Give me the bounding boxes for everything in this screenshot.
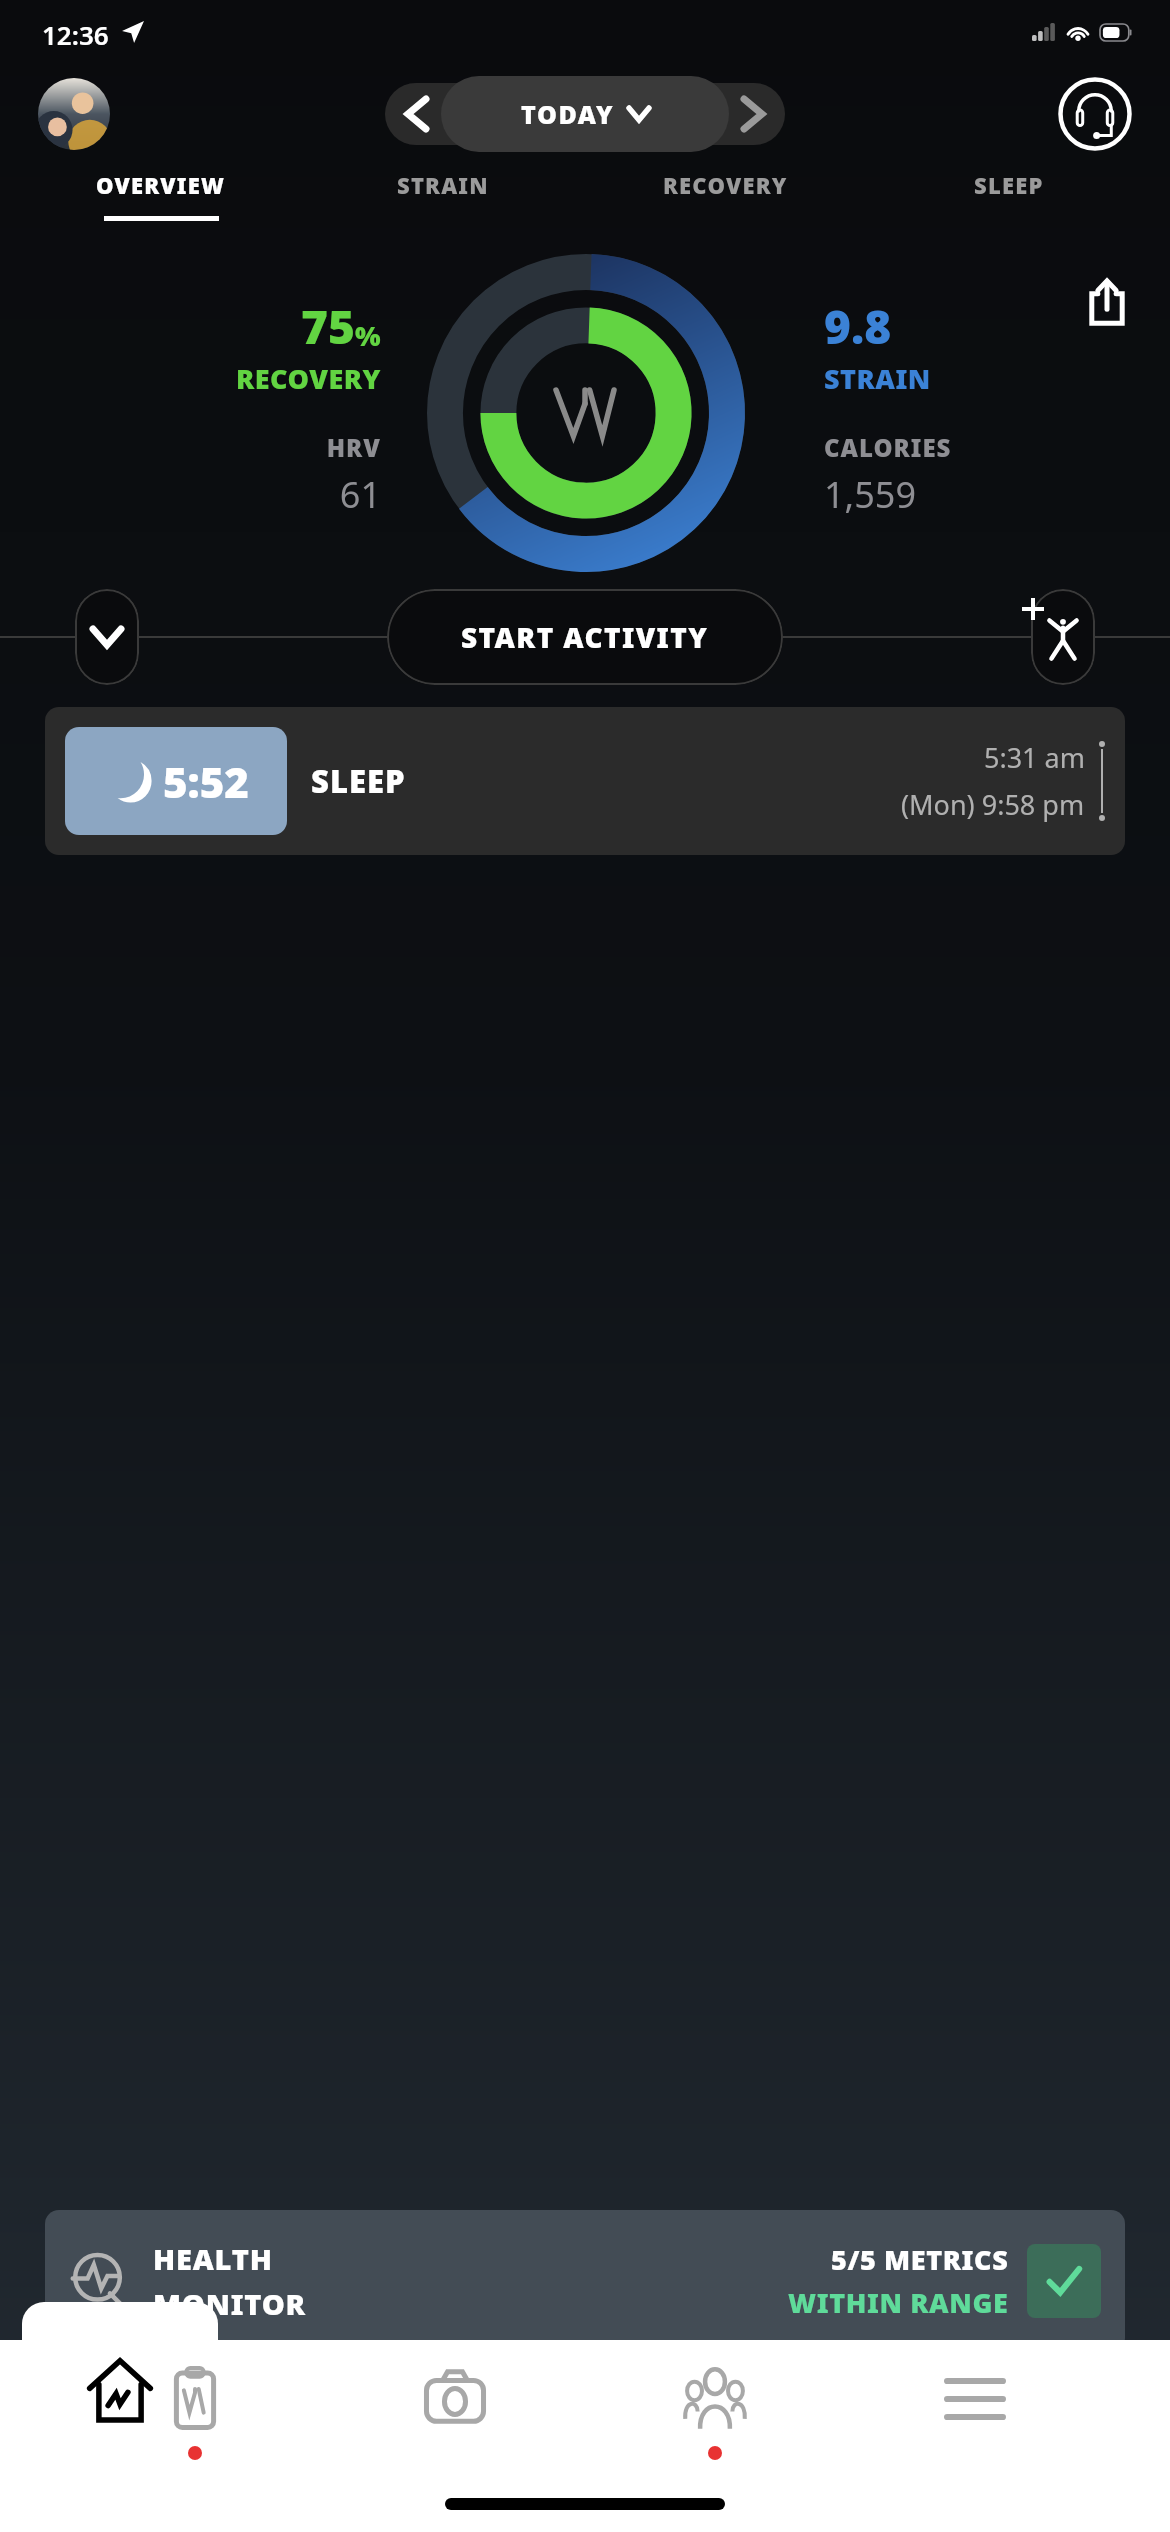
button[interactable]: STRAIN: [302, 164, 584, 227]
button[interactable]: HEALTH: [45, 2210, 1125, 2352]
staticText: OVERVIEW: [96, 170, 226, 200]
staticText: (Mon) 9:58 pm: [901, 786, 1085, 823]
staticText: HEALTH: [153, 2239, 273, 2278]
staticText: %: [355, 317, 381, 354]
button[interactable]: TODAY: [441, 76, 729, 152]
staticText: STRAIN: [397, 170, 489, 200]
staticText: 1,559: [824, 470, 1134, 519]
button[interactable]: Menu: [910, 2340, 1040, 2532]
button[interactable]: Support: [1058, 77, 1132, 151]
button[interactable]: Previous day: [392, 89, 442, 139]
staticText: CALORIES: [824, 431, 1134, 464]
staticText: SLEEP: [311, 760, 406, 802]
staticText: WITHIN RANGE: [788, 2284, 1009, 2321]
button[interactable]: 5:52: [45, 707, 1125, 855]
button[interactable]: Next day: [728, 89, 778, 139]
button[interactable]: Share: [1082, 277, 1132, 327]
button[interactable]: START ACTIVITY: [387, 589, 783, 685]
staticText: 5:31 am: [984, 739, 1085, 776]
staticText: 5:52: [163, 753, 249, 810]
staticText: 9.8: [824, 295, 1134, 358]
staticText: STRAIN: [824, 360, 1134, 397]
staticText: TODAY: [521, 97, 615, 131]
button[interactable]: 70%: [45, 2362, 1125, 2510]
staticText: 12:31pm: [945, 2412, 1099, 2461]
staticText: HRV: [36, 431, 381, 464]
staticText: RECOVERY: [663, 170, 788, 200]
staticText: SLEEP: [974, 170, 1044, 200]
button[interactable]: RECOVERY: [584, 164, 867, 227]
staticText: RECOVERY: [36, 360, 381, 397]
button[interactable]: Add activity: [1031, 589, 1095, 685]
staticText: START ACTIVITY: [461, 618, 709, 656]
button[interactable]: Community: [650, 2340, 780, 2532]
button[interactable]: Profile: [38, 78, 110, 150]
staticText: 61: [36, 470, 381, 519]
button[interactable]: SLEEP: [867, 164, 1150, 227]
staticText: 12:36: [42, 17, 109, 52]
staticText: 70%: [107, 2412, 184, 2461]
staticText: 75: [301, 295, 355, 358]
staticText: 5/5 METRICS: [831, 2241, 1009, 2278]
button[interactable]: OVERVIEW: [20, 164, 302, 227]
button[interactable]: Home: [22, 2302, 218, 2532]
button[interactable]: Expand: [75, 589, 139, 685]
button[interactable]: Camera: [390, 2340, 520, 2532]
button[interactable]: Journal: [130, 2340, 260, 2532]
staticText: MONITOR: [153, 2284, 307, 2323]
